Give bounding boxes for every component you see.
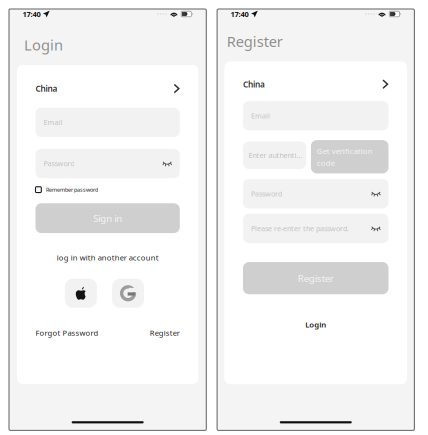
staticText: Forgot Password	[35, 328, 98, 338]
staticText: Email	[251, 111, 270, 120]
staticText: Register	[227, 31, 283, 51]
staticText: Login	[305, 319, 326, 330]
button[interactable]: Sign in with Apple	[65, 279, 97, 308]
staticText: China	[243, 79, 265, 90]
staticText: Login	[24, 35, 63, 54]
button[interactable]: China	[35, 83, 180, 94]
staticText: Remember password	[46, 186, 98, 193]
button[interactable]: Login	[305, 319, 326, 330]
staticText: 17:40	[22, 9, 40, 19]
staticText: Password	[43, 159, 74, 168]
staticText: log in with another account	[57, 253, 159, 263]
staticText: code	[317, 157, 335, 168]
staticText: Enter authenti...	[249, 150, 303, 160]
button[interactable]: Forgot Password	[35, 328, 98, 338]
button[interactable]: Register	[150, 328, 180, 338]
staticText: Register	[150, 328, 180, 338]
button[interactable]: Register	[243, 262, 388, 294]
staticText: Get verification	[317, 146, 373, 156]
staticText: 17:40	[231, 9, 249, 19]
staticText: China	[35, 83, 57, 94]
staticText: Register	[298, 272, 334, 284]
staticText: Sign in	[93, 212, 122, 224]
button[interactable]: Sign in with Google	[112, 279, 144, 308]
staticText: Password	[251, 189, 282, 198]
button[interactable]: Get verification	[311, 140, 388, 173]
button[interactable]: Sign in	[35, 203, 180, 233]
button[interactable]: China	[243, 79, 388, 90]
staticText: Email	[43, 117, 62, 127]
staticText: Please re-enter the password.	[251, 224, 349, 233]
button[interactable]: Remember password	[35, 187, 180, 193]
